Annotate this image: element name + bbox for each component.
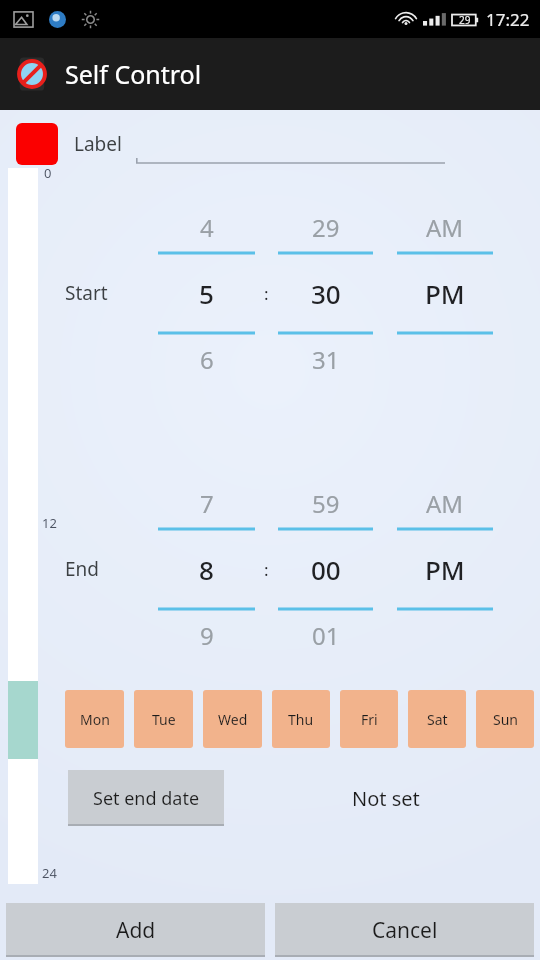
staticText: 4 [200, 211, 214, 244]
staticText: : [264, 282, 269, 305]
staticText: 5 [199, 276, 214, 311]
staticText: Start [65, 280, 108, 306]
button[interactable]: Cancel [275, 903, 534, 957]
staticText: 0 [44, 164, 52, 182]
staticText: AM [426, 487, 464, 520]
staticText: Self Control [65, 57, 202, 91]
other: App icon [14, 56, 50, 92]
staticText: Cancel [372, 916, 438, 945]
staticText: 31 [312, 343, 340, 376]
staticText: 12 [42, 514, 57, 532]
button[interactable]: Picker 30 [278, 203, 373, 383]
staticText: End [65, 556, 99, 582]
staticText: Sat [427, 710, 448, 729]
staticText: 01 [312, 619, 340, 652]
button[interactable]: Sat [408, 690, 466, 748]
staticText: 6 [200, 343, 214, 376]
staticText: Tue [152, 710, 176, 729]
staticText: Wed [218, 710, 248, 729]
staticText: 17:22 [486, 8, 530, 31]
staticText: Mon [80, 710, 110, 729]
staticText: Add [116, 916, 156, 945]
button[interactable]: Mon [65, 690, 124, 748]
staticText: 59 [312, 487, 340, 520]
staticText: 8 [199, 552, 214, 587]
staticText: Label [74, 131, 122, 157]
staticText: AM [426, 211, 464, 244]
button[interactable]: Picker 8 [158, 479, 255, 659]
button[interactable]: Label text field [136, 124, 445, 164]
button[interactable]: Picker PM [397, 479, 493, 659]
button[interactable]: Picker PM [397, 203, 493, 383]
button[interactable]: Sun [476, 690, 534, 748]
staticText: 00 [311, 552, 341, 587]
staticText: Fri [361, 710, 378, 729]
staticText: : [264, 558, 269, 581]
staticText: Thu [288, 710, 314, 729]
staticText: PM [425, 276, 465, 311]
staticText: 29 [459, 13, 471, 27]
staticText: 29 [312, 211, 340, 244]
button[interactable]: Thu [272, 690, 330, 748]
staticText: 24 [42, 864, 57, 882]
button[interactable]: Picker 5 [158, 203, 255, 383]
button[interactable]: Pick colour [16, 123, 58, 165]
staticText: PM [425, 552, 465, 587]
staticText: 7 [200, 487, 214, 520]
staticText: 9 [200, 619, 214, 652]
button[interactable]: Add [6, 903, 265, 957]
staticText: Not set [352, 785, 420, 812]
button[interactable]: Wed [203, 690, 262, 748]
button[interactable]: Picker 00 [278, 479, 373, 659]
button[interactable]: Set end date [68, 770, 224, 826]
staticText: 30 [311, 276, 341, 311]
button[interactable]: Fri [340, 690, 398, 748]
staticText: Set end date [93, 786, 200, 811]
button[interactable]: Tue [134, 690, 193, 748]
staticText: Sun [493, 710, 518, 729]
